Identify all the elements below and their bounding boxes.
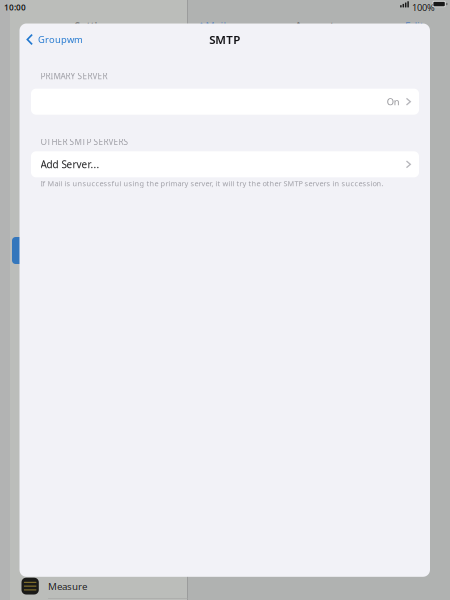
staticText: Settings [74,19,114,33]
staticText: Add Server... [40,158,99,171]
staticText: If Mail is unsuccessful using the primar… [40,178,383,188]
staticText: Measure [48,579,87,593]
staticText: On [387,95,400,108]
staticText: Accounts [295,19,339,33]
staticText: PRIMARY SERVER [40,70,107,82]
button[interactable]: On [31,89,419,115]
staticText: Groupwm [38,33,83,46]
staticText: Mail [205,19,226,33]
staticText: SMTP [209,32,240,47]
button[interactable]: Add Server... [31,151,419,177]
staticText: 100% [412,1,435,14]
button[interactable]: Groupwm [19,25,90,53]
staticText: OTHER SMTP SERVERS [40,136,128,147]
staticText: Edit [405,19,424,33]
staticText: 10:00 [4,2,26,13]
